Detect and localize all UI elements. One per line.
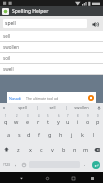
button[interactable]: n bbox=[69, 143, 80, 156]
other: App icon bbox=[2, 8, 9, 15]
button[interactable]: Speak bbox=[90, 19, 100, 29]
button[interactable]: spell bbox=[3, 19, 87, 28]
staticText: h bbox=[59, 131, 63, 138]
staticText: 4 bbox=[38, 114, 40, 118]
staticText: y bbox=[57, 118, 60, 125]
button[interactable]: a bbox=[4, 128, 14, 141]
staticText: 1 bbox=[5, 114, 7, 118]
button[interactable]: 3 bbox=[22, 113, 33, 126]
button[interactable]: Recents bbox=[68, 173, 78, 183]
button[interactable]: 8 bbox=[73, 113, 83, 126]
button[interactable]: Voice input bbox=[95, 103, 103, 112]
button[interactable]: m bbox=[80, 143, 91, 156]
staticText: , bbox=[15, 161, 17, 168]
button[interactable]: Settings bbox=[0, 103, 8, 112]
staticText: d bbox=[27, 131, 31, 138]
staticText: l bbox=[93, 131, 95, 138]
staticText: s bbox=[18, 131, 21, 138]
staticText: Nasadi bbox=[9, 96, 22, 101]
staticText: n bbox=[73, 146, 77, 153]
button[interactable]: 7 bbox=[63, 113, 73, 126]
button[interactable]: Backspace bbox=[91, 142, 103, 157]
staticText: t bbox=[47, 118, 49, 125]
staticText: Spelling Helper bbox=[12, 8, 49, 15]
button[interactable]: x bbox=[24, 143, 36, 156]
button[interactable]: . bbox=[81, 158, 89, 171]
staticText: 3 bbox=[27, 114, 29, 118]
button[interactable]: swell bbox=[0, 64, 103, 74]
button[interactable]: 0 bbox=[93, 113, 103, 126]
button[interactable]: swollen bbox=[0, 42, 103, 52]
button[interactable]: s bbox=[14, 128, 24, 141]
button[interactable]: 6 bbox=[53, 113, 63, 126]
staticText: e bbox=[26, 118, 30, 125]
staticText: j bbox=[71, 131, 73, 138]
button[interactable]: soil bbox=[0, 53, 103, 63]
staticText: swollen bbox=[3, 44, 20, 50]
button[interactable]: c bbox=[36, 143, 47, 156]
staticText: o bbox=[86, 118, 90, 125]
button[interactable]: Switch keyboard bbox=[87, 173, 97, 183]
button[interactable]: Enter bbox=[89, 157, 103, 172]
button[interactable]: spell bbox=[8, 103, 37, 112]
staticText: g bbox=[48, 131, 52, 138]
staticText: sell bbox=[49, 105, 56, 110]
staticText: f bbox=[38, 131, 40, 138]
staticText: m bbox=[83, 146, 89, 153]
button[interactable]: f bbox=[34, 128, 44, 141]
staticText: k bbox=[81, 131, 84, 138]
button[interactable]: sell bbox=[0, 31, 103, 41]
button[interactable]: 5 bbox=[43, 113, 53, 126]
staticText: swell bbox=[3, 66, 14, 72]
staticText: x bbox=[29, 146, 32, 153]
staticText: v bbox=[51, 146, 54, 153]
staticText: b bbox=[62, 146, 66, 153]
staticText: swollen bbox=[74, 105, 89, 110]
staticText: 6 bbox=[58, 114, 60, 118]
button[interactable]: d bbox=[24, 128, 34, 141]
staticText: z bbox=[17, 146, 20, 153]
button[interactable]: 2 bbox=[11, 113, 22, 126]
button[interactable]: , bbox=[12, 158, 20, 171]
staticText: ?123 bbox=[3, 163, 10, 167]
staticText: 2 bbox=[16, 114, 18, 118]
staticText: a bbox=[7, 131, 11, 138]
button[interactable]: Shift bbox=[0, 142, 12, 157]
staticText: r bbox=[37, 118, 40, 125]
button[interactable]: Nasadi bbox=[7, 92, 96, 103]
button[interactable]: g bbox=[44, 128, 55, 141]
staticText: soil bbox=[3, 55, 11, 61]
staticText: 0 bbox=[97, 114, 99, 118]
staticText: q bbox=[4, 118, 8, 125]
button[interactable]: sell bbox=[38, 103, 66, 112]
button[interactable]: z bbox=[12, 143, 24, 156]
button[interactable]: 1 bbox=[0, 113, 11, 126]
staticText: spell bbox=[18, 105, 27, 110]
button[interactable]: Home bbox=[42, 173, 52, 183]
staticText: i bbox=[77, 118, 79, 125]
button[interactable]: ?123 bbox=[0, 157, 12, 172]
button[interactable]: Emoji bbox=[20, 157, 28, 172]
button[interactable]: Back bbox=[16, 173, 26, 183]
staticText: p bbox=[96, 118, 100, 125]
staticText: 7 bbox=[67, 114, 69, 118]
staticText: . bbox=[84, 161, 86, 168]
button[interactable]: b bbox=[58, 143, 69, 156]
staticText: sell bbox=[3, 33, 11, 39]
staticText: spell bbox=[5, 20, 16, 27]
button[interactable]: j bbox=[66, 128, 77, 141]
button[interactable]: swollen bbox=[67, 103, 95, 112]
staticText: 5 bbox=[47, 114, 49, 118]
staticText: c bbox=[40, 146, 43, 153]
button[interactable]: v bbox=[47, 143, 58, 156]
button[interactable]: h bbox=[55, 128, 66, 141]
staticText: w bbox=[14, 118, 19, 125]
button[interactable]: 4 bbox=[33, 113, 43, 126]
staticText: 9 bbox=[87, 114, 89, 118]
button[interactable]: 9 bbox=[83, 113, 93, 126]
button[interactable]: l bbox=[88, 128, 99, 141]
button[interactable]: k bbox=[77, 128, 88, 141]
staticText: 8 bbox=[77, 114, 79, 118]
staticText: u bbox=[66, 118, 70, 125]
